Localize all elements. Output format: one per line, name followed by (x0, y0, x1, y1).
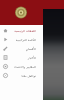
button[interactable]: الكلمة الترحيبية (0, 35, 43, 44)
staticText: الأقسام (11, 47, 36, 51)
staticText: الأخبار (11, 56, 36, 60)
button[interactable]: الأخبار (0, 53, 43, 62)
button[interactable]: المعايير والاعتماد الأكاديمي (0, 62, 43, 71)
staticText: الكلمة الترحيبية (11, 38, 36, 42)
staticText: الصفحة الرئيسية (11, 29, 36, 33)
button[interactable]: تواصل معنا (0, 71, 43, 80)
staticText: المعايير والاعتماد الأكاديمي (11, 65, 36, 69)
button[interactable]: الأقسام (0, 44, 43, 53)
staticText: تواصل معنا (11, 74, 36, 78)
button[interactable]: الصفحة الرئيسية (0, 26, 43, 35)
